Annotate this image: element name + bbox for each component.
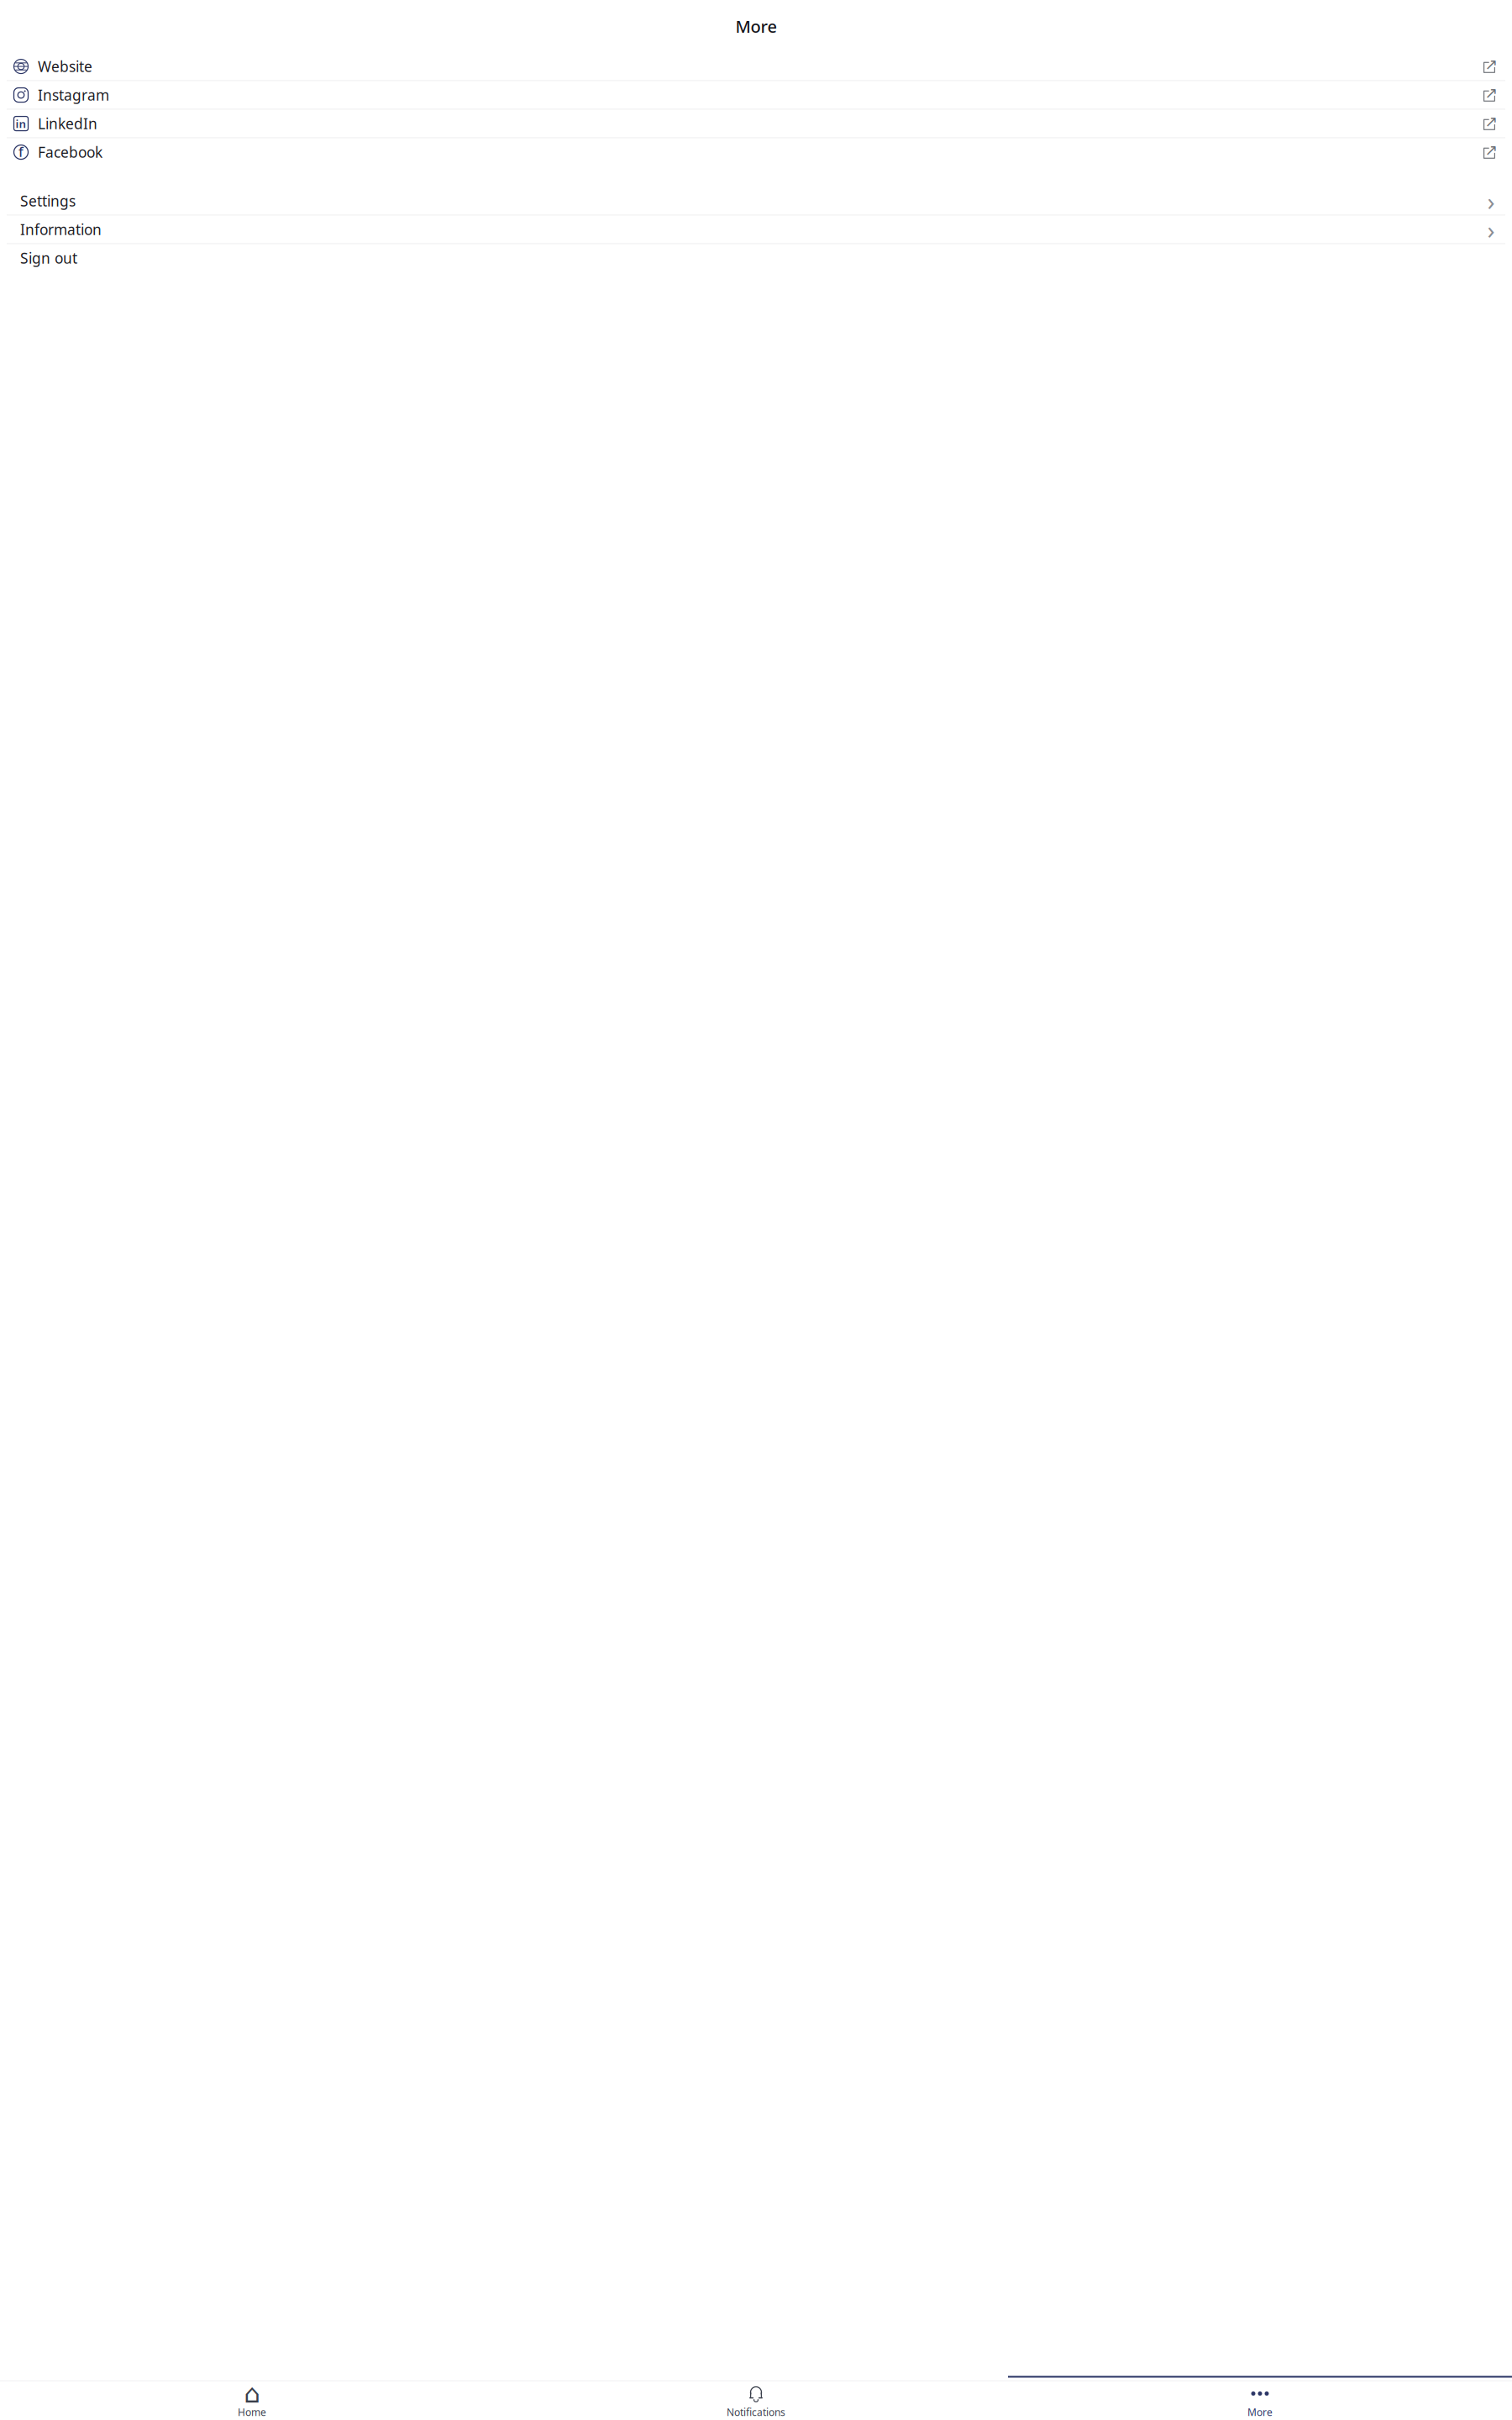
staticText: f [18,143,24,161]
button[interactable]: Website [0,53,1512,80]
staticText: Facebook [38,143,102,162]
staticText: Home [238,2405,266,2419]
staticText: Notifications [727,2405,785,2419]
staticText: More [735,15,777,37]
staticText: Settings [20,191,76,211]
button[interactable]: More [1008,2381,1512,2420]
button[interactable]: Information [0,216,1512,243]
staticText: ↗ [1485,55,1498,73]
button[interactable]: Instagram [0,81,1512,109]
staticText: Instagram [38,85,109,105]
staticText: ↗ [1485,84,1498,102]
staticText: Website [38,57,92,76]
staticText: › [1487,213,1495,246]
staticText: LinkedIn [38,114,97,133]
staticText: ↗ [1485,141,1498,159]
staticText: ↗ [1485,113,1498,130]
staticText: › [1487,185,1495,217]
staticText: in [16,116,26,131]
staticText: Sign out [20,248,77,268]
button[interactable]: in [0,110,1512,137]
button[interactable]: Settings [0,187,1512,215]
button[interactable]: Sign out [0,244,1512,272]
staticText: More [1247,2405,1273,2419]
button[interactable]: f [0,138,1512,166]
staticText: Information [20,220,102,239]
button[interactable]: Notifications [504,2381,1008,2420]
button[interactable]: ⌂ [0,2381,504,2420]
staticText: ⌂ [244,2379,260,2408]
